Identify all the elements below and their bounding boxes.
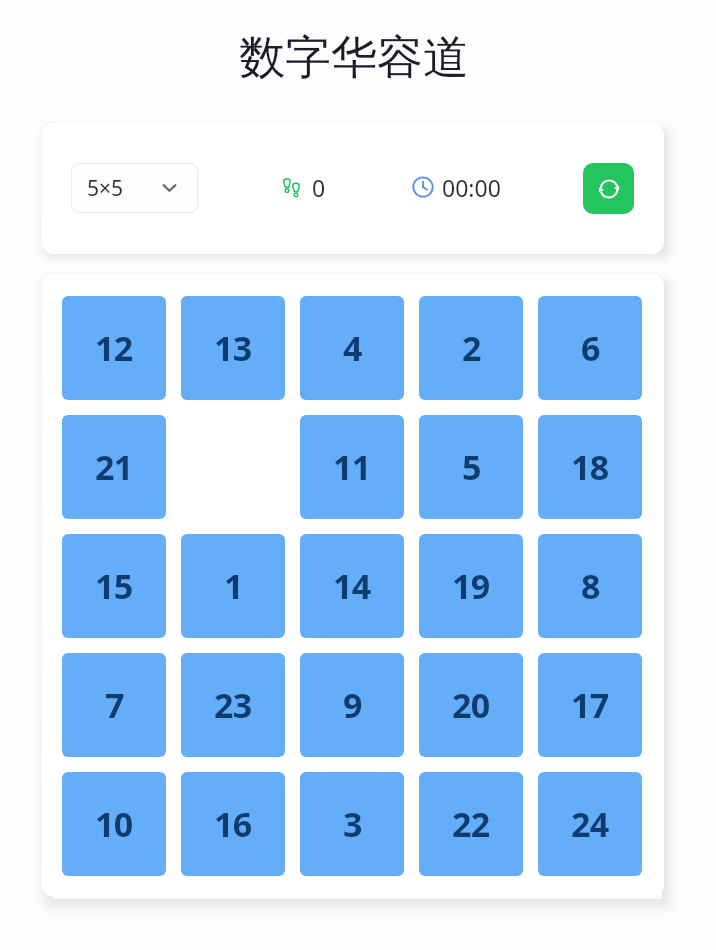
staticText: 13 [214, 325, 252, 371]
staticText: 5×5 [87, 174, 124, 203]
staticText: 5 [462, 444, 481, 490]
button[interactable]: 6 [538, 296, 642, 400]
other: Elapsed time [412, 176, 434, 198]
staticText: 21 [95, 444, 133, 490]
staticText: 9 [343, 682, 362, 728]
staticText: 18 [571, 444, 609, 490]
staticText: 20 [452, 682, 490, 728]
button[interactable]: 2 [419, 296, 523, 400]
button[interactable]: 13 [181, 296, 285, 400]
staticText: 19 [452, 563, 490, 609]
button[interactable]: 9 [300, 653, 404, 757]
button[interactable]: 10 [62, 772, 166, 876]
staticText: 12 [95, 325, 133, 371]
staticText: 0 [312, 172, 326, 203]
button[interactable]: 21 [62, 415, 166, 519]
staticText: 8 [581, 563, 600, 609]
staticText: 15 [95, 563, 133, 609]
staticText: 14 [333, 563, 371, 609]
button[interactable]: 20 [419, 653, 523, 757]
staticText: 22 [452, 801, 490, 847]
staticText: 数字华容道 [239, 29, 469, 87]
other: Expand board size menu [163, 184, 176, 192]
staticText: 1 [224, 563, 243, 609]
button[interactable]: 14 [300, 534, 404, 638]
button[interactable]: 16 [181, 772, 285, 876]
staticText: 00:00 [442, 172, 501, 203]
button[interactable]: 8 [538, 534, 642, 638]
staticText: 17 [571, 682, 609, 728]
button[interactable]: 17 [538, 653, 642, 757]
staticText: 7 [105, 682, 124, 728]
staticText: 10 [95, 801, 133, 847]
button[interactable]: 11 [300, 415, 404, 519]
button[interactable]: 7 [62, 653, 166, 757]
button[interactable]: 23 [181, 653, 285, 757]
button[interactable]: 22 [419, 772, 523, 876]
button[interactable]: 5 [419, 415, 523, 519]
staticText: 16 [214, 801, 252, 847]
button[interactable]: Restart game [583, 163, 634, 214]
staticText: 6 [581, 325, 600, 371]
staticText: 2 [462, 325, 481, 371]
other: Steps taken [283, 177, 300, 198]
button[interactable]: 3 [300, 772, 404, 876]
button[interactable]: 19 [419, 534, 523, 638]
staticText: 24 [571, 801, 609, 847]
staticText: 23 [214, 682, 252, 728]
staticText: 3 [343, 801, 362, 847]
button[interactable]: 1 [181, 534, 285, 638]
button[interactable]: 18 [538, 415, 642, 519]
staticText: 4 [343, 325, 362, 371]
staticText: 11 [333, 444, 371, 490]
button[interactable]: 4 [300, 296, 404, 400]
button[interactable]: 15 [62, 534, 166, 638]
button[interactable]: 12 [62, 296, 166, 400]
button[interactable]: 24 [538, 772, 642, 876]
button[interactable]: 5×5 [71, 163, 198, 213]
